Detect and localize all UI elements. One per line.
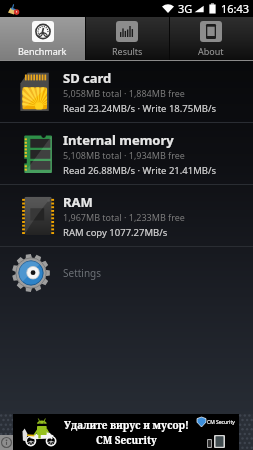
button[interactable]: Settings	[0, 247, 253, 299]
button[interactable]: Internal memory	[0, 123, 253, 185]
staticText: Internal memory	[63, 131, 174, 149]
staticText: 1,967MB total · 1,233MB free	[63, 211, 185, 223]
staticText: Benchmark	[18, 45, 67, 57]
staticText: 5,058MB total · 1,884MB free	[63, 87, 185, 99]
staticText: CM Security	[96, 433, 157, 447]
staticText: RAM	[63, 193, 93, 211]
staticText: RAM copy 1077.27MB/s	[63, 226, 168, 239]
button[interactable]: About	[169, 17, 253, 60]
other: Cleaner notification	[7, 3, 19, 15]
button[interactable]: Удалите вирус и мусор!	[13, 414, 239, 450]
button[interactable]: Results	[85, 17, 169, 60]
staticText: Settings	[63, 266, 102, 280]
staticText: SD card	[63, 69, 112, 87]
staticText: Read 23.24MB/s · Write 18.75MB/s	[63, 102, 217, 115]
button[interactable]: SD card	[0, 61, 253, 123]
staticText: 3G	[178, 1, 193, 16]
staticText: 16:43	[221, 1, 250, 16]
button[interactable]: RAM	[0, 185, 253, 247]
staticText: Read 26.88MB/s · Write 21.41MB/s	[63, 164, 217, 177]
button[interactable]: Benchmark	[0, 17, 85, 60]
staticText: Results	[112, 45, 143, 57]
button[interactable]: Ad info	[0, 435, 13, 450]
staticText: CM Security	[207, 419, 235, 426]
staticText: Удалите вирус и мусор!	[64, 418, 189, 432]
staticText: 5,108MB total · 1,934MB free	[63, 149, 185, 161]
staticText: About	[198, 45, 224, 57]
